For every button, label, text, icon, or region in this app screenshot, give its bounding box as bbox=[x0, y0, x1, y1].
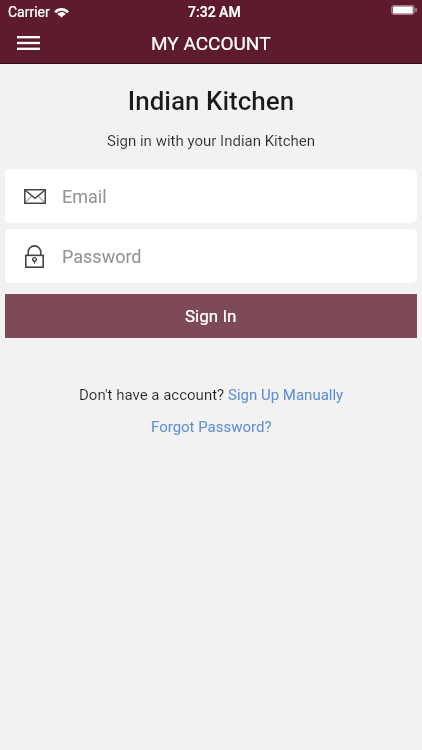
button[interactable]: Password bbox=[5, 229, 417, 283]
staticText: Don't have a account? bbox=[79, 386, 228, 404]
staticText: Indian Kitchen bbox=[0, 86, 422, 116]
button[interactable]: Menu bbox=[6, 22, 50, 64]
staticText: 7:32 AM bbox=[188, 4, 241, 20]
button[interactable]: Email bbox=[5, 169, 417, 223]
button[interactable]: Sign In bbox=[5, 294, 417, 338]
button[interactable]: Sign Up Manually bbox=[228, 386, 344, 404]
staticText: Email bbox=[62, 186, 107, 207]
staticText: Carrier bbox=[8, 4, 50, 20]
staticText: Password bbox=[62, 246, 142, 267]
button[interactable]: Forgot Password? bbox=[151, 418, 272, 436]
staticText: Sign Up Manually bbox=[228, 386, 344, 404]
staticText: Sign in with your Indian Kitchen bbox=[0, 132, 422, 150]
staticText: Sign In bbox=[185, 306, 237, 326]
staticText: Forgot Password? bbox=[151, 418, 272, 436]
staticText: MY ACCOUNT bbox=[151, 32, 271, 54]
